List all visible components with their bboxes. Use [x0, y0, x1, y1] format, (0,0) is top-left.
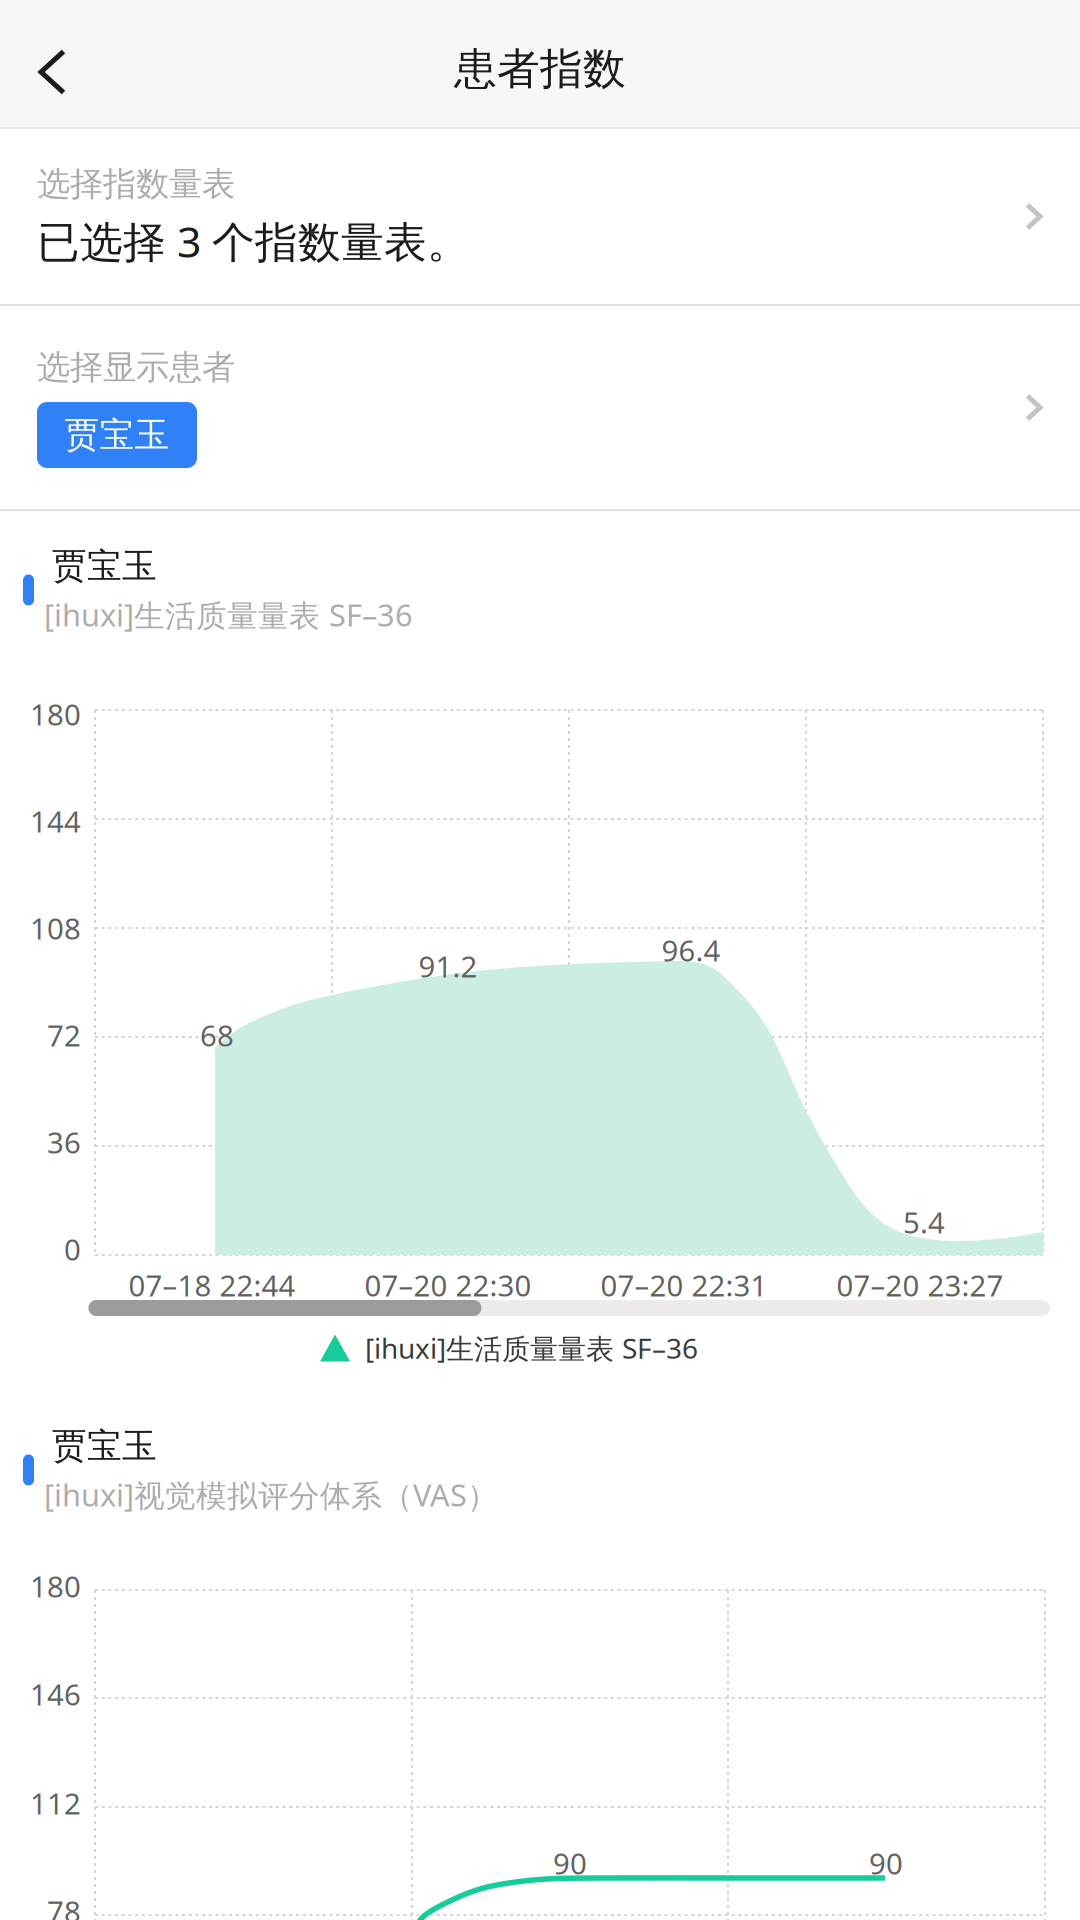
staticText: 180 [30, 694, 81, 733]
staticText: 07–20 22:31 [600, 1265, 767, 1304]
staticText: 07–20 22:30 [364, 1265, 531, 1304]
staticText: 91.2 [418, 946, 477, 985]
staticText: 112 [30, 1783, 81, 1822]
staticText: 选择显示患者 [37, 347, 235, 388]
staticText: 68 [200, 1015, 234, 1054]
staticText: [ihuxi]生活质量量表 SF–36 [365, 1329, 698, 1367]
staticText: 96.4 [661, 930, 720, 969]
staticText: 贾宝玉 [52, 1425, 157, 1467]
staticText: 07–20 23:27 [836, 1265, 1003, 1304]
staticText: 贾宝玉 [52, 545, 157, 587]
staticText: 0 [64, 1229, 81, 1268]
staticText: 180 [30, 1566, 81, 1605]
staticText: 146 [30, 1674, 81, 1713]
staticText: 36 [47, 1122, 81, 1161]
button[interactable]: Back [4, 24, 100, 120]
staticText: 患者指数 [454, 43, 626, 95]
staticText: 78 [47, 1891, 81, 1920]
staticText: 07–18 22:44 [128, 1265, 295, 1304]
staticText: [ihuxi]视觉模拟评分体系（VAS） [44, 1474, 498, 1515]
button[interactable]: 选择显示患者 [0, 306, 1080, 509]
staticText: 选择指数量表 [37, 164, 235, 205]
staticText: 72 [47, 1015, 81, 1054]
staticText: 已选择 3 个指数量表。 [37, 213, 470, 269]
staticText: 5.4 [903, 1202, 945, 1241]
button[interactable]: 选择指数量表 [0, 129, 1080, 304]
staticText: 90 [869, 1843, 903, 1882]
staticText: 144 [30, 801, 81, 840]
staticText: 贾宝玉 [64, 414, 169, 456]
staticText: 90 [553, 1843, 587, 1882]
staticText: 108 [30, 908, 81, 947]
staticText: [ihuxi]生活质量量表 SF–36 [44, 594, 413, 635]
